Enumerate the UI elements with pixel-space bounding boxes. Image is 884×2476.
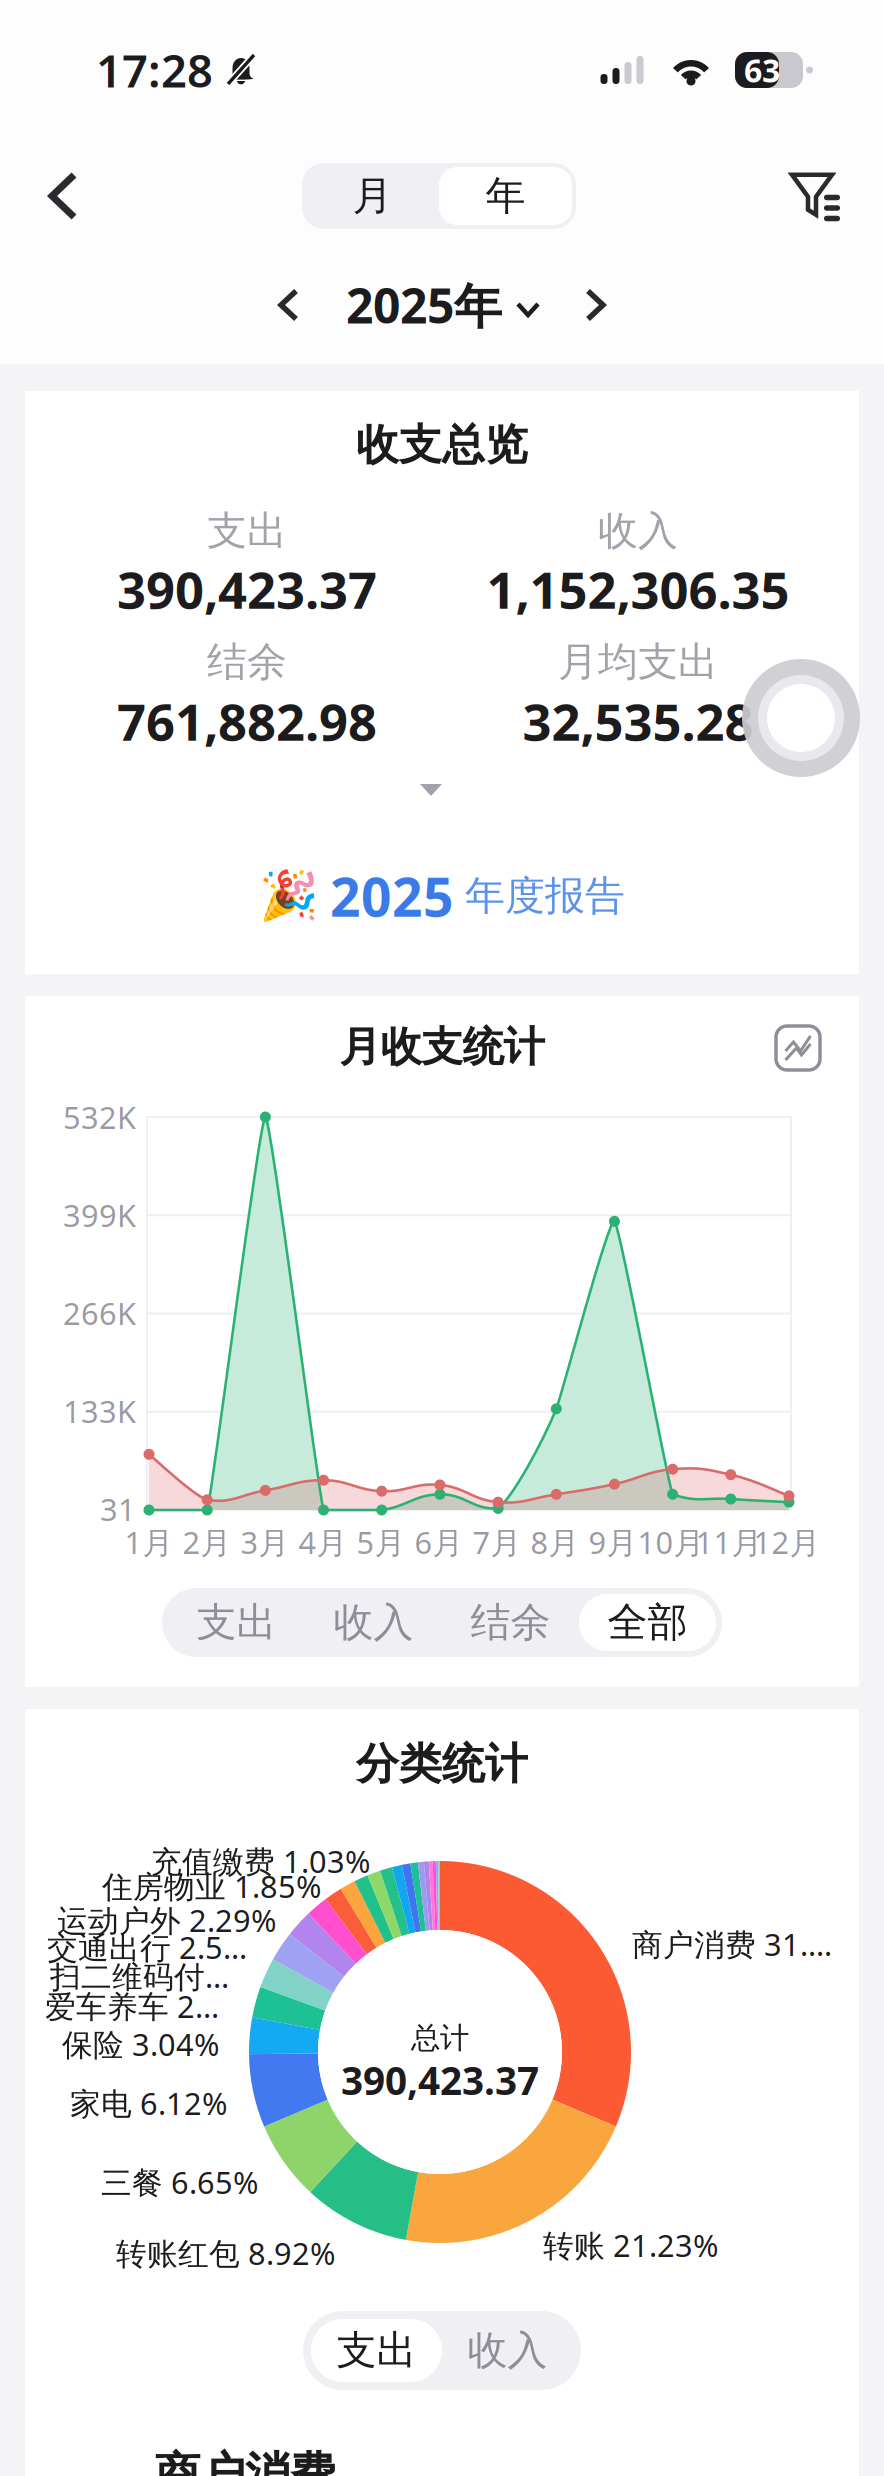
staticText: 12月	[753, 1522, 820, 1562]
staticText: 8月	[530, 1522, 579, 1562]
staticText: 分类统计	[356, 1738, 528, 1790]
staticText: 17:28	[96, 40, 213, 100]
staticText: 收入	[467, 2326, 547, 2375]
staticText: 10月	[637, 1522, 704, 1562]
staticText: 532K	[63, 1097, 136, 1137]
staticText: 商户消费 31....	[632, 1924, 832, 1964]
staticText: 保险 3.04%	[62, 2024, 219, 2064]
staticText: 年	[485, 171, 525, 220]
staticText: 1月	[124, 1522, 173, 1562]
staticText: 商户消费	[155, 2446, 335, 2476]
button[interactable]: 🎉	[75, 846, 809, 946]
staticText: 390,423.37	[117, 555, 377, 623]
staticText: 运动户外 2.29%	[57, 1900, 276, 1940]
button[interactable]: Previous year	[259, 273, 318, 337]
staticText: 家电 6.12%	[70, 2083, 227, 2123]
staticText: 充值缴费 1.03%	[151, 1841, 370, 1881]
staticText: 扫二维码付...	[50, 1956, 229, 1996]
staticText: 6月	[414, 1522, 463, 1562]
staticText: 5月	[356, 1522, 405, 1562]
staticText: 2月	[182, 1522, 231, 1562]
staticText: 支出	[207, 506, 287, 555]
button[interactable]: 支出	[168, 1594, 305, 1651]
button[interactable]: 收入	[442, 2319, 573, 2382]
staticText: 转账 21.23%	[543, 2225, 718, 2265]
staticText: 399K	[63, 1195, 136, 1235]
staticText: 31	[100, 1489, 136, 1529]
staticText: 支出	[196, 1598, 276, 1647]
button[interactable]: 全部	[579, 1594, 716, 1651]
staticText: 全部	[607, 1598, 687, 1647]
staticText: 收入	[333, 1598, 413, 1647]
button[interactable]: Chart type	[766, 1016, 830, 1080]
button[interactable]: Next year	[566, 273, 625, 337]
staticText: 9月	[588, 1522, 637, 1562]
staticText: 结余	[207, 637, 287, 686]
staticText: 结余	[470, 1598, 550, 1647]
staticText: 月收支统计	[339, 1022, 544, 1072]
staticText: 月均支出	[558, 637, 718, 686]
staticText: 年度报告	[465, 871, 625, 920]
staticText: 7月	[472, 1522, 521, 1562]
staticText: 390,423.37	[341, 2054, 539, 2106]
button[interactable]: 结余	[442, 1594, 579, 1651]
button[interactable]: Filter	[776, 158, 862, 234]
button[interactable]: 月	[306, 167, 439, 225]
staticText: 住房物业 1.85%	[102, 1866, 321, 1906]
staticText: 2025	[330, 861, 454, 931]
staticText: 转账红包 8.92%	[116, 2233, 335, 2273]
button[interactable]: 2025年	[340, 269, 544, 341]
staticText: 🎉	[259, 869, 319, 923]
staticText: 总计	[411, 2020, 469, 2056]
button[interactable]: 年	[439, 167, 572, 225]
staticText: 63	[744, 49, 780, 91]
staticText: 4月	[298, 1522, 347, 1562]
staticText: 收支总览	[356, 419, 528, 471]
staticText: 支出	[336, 2326, 416, 2375]
staticText: 三餐 6.65%	[101, 2162, 258, 2202]
staticText: 133K	[63, 1391, 136, 1431]
staticText: 爱车养车 2...	[45, 1986, 219, 2026]
button[interactable]: 收入	[305, 1594, 442, 1651]
staticText: 11月	[695, 1522, 762, 1562]
staticText: 1,152,306.35	[486, 555, 789, 623]
staticText: 收入	[598, 506, 678, 555]
staticText: 交通出行 2.5...	[47, 1927, 247, 1967]
staticText: 32,535.28	[522, 687, 753, 755]
staticText: 266K	[63, 1293, 136, 1333]
staticText: 761,882.98	[117, 687, 377, 755]
button[interactable]: Expand	[376, 762, 486, 818]
button[interactable]: 支出	[311, 2319, 442, 2382]
button[interactable]: Back	[24, 159, 102, 233]
staticText: 月	[352, 171, 392, 220]
staticText: 3月	[240, 1522, 289, 1562]
staticText: 2025年	[346, 273, 502, 337]
